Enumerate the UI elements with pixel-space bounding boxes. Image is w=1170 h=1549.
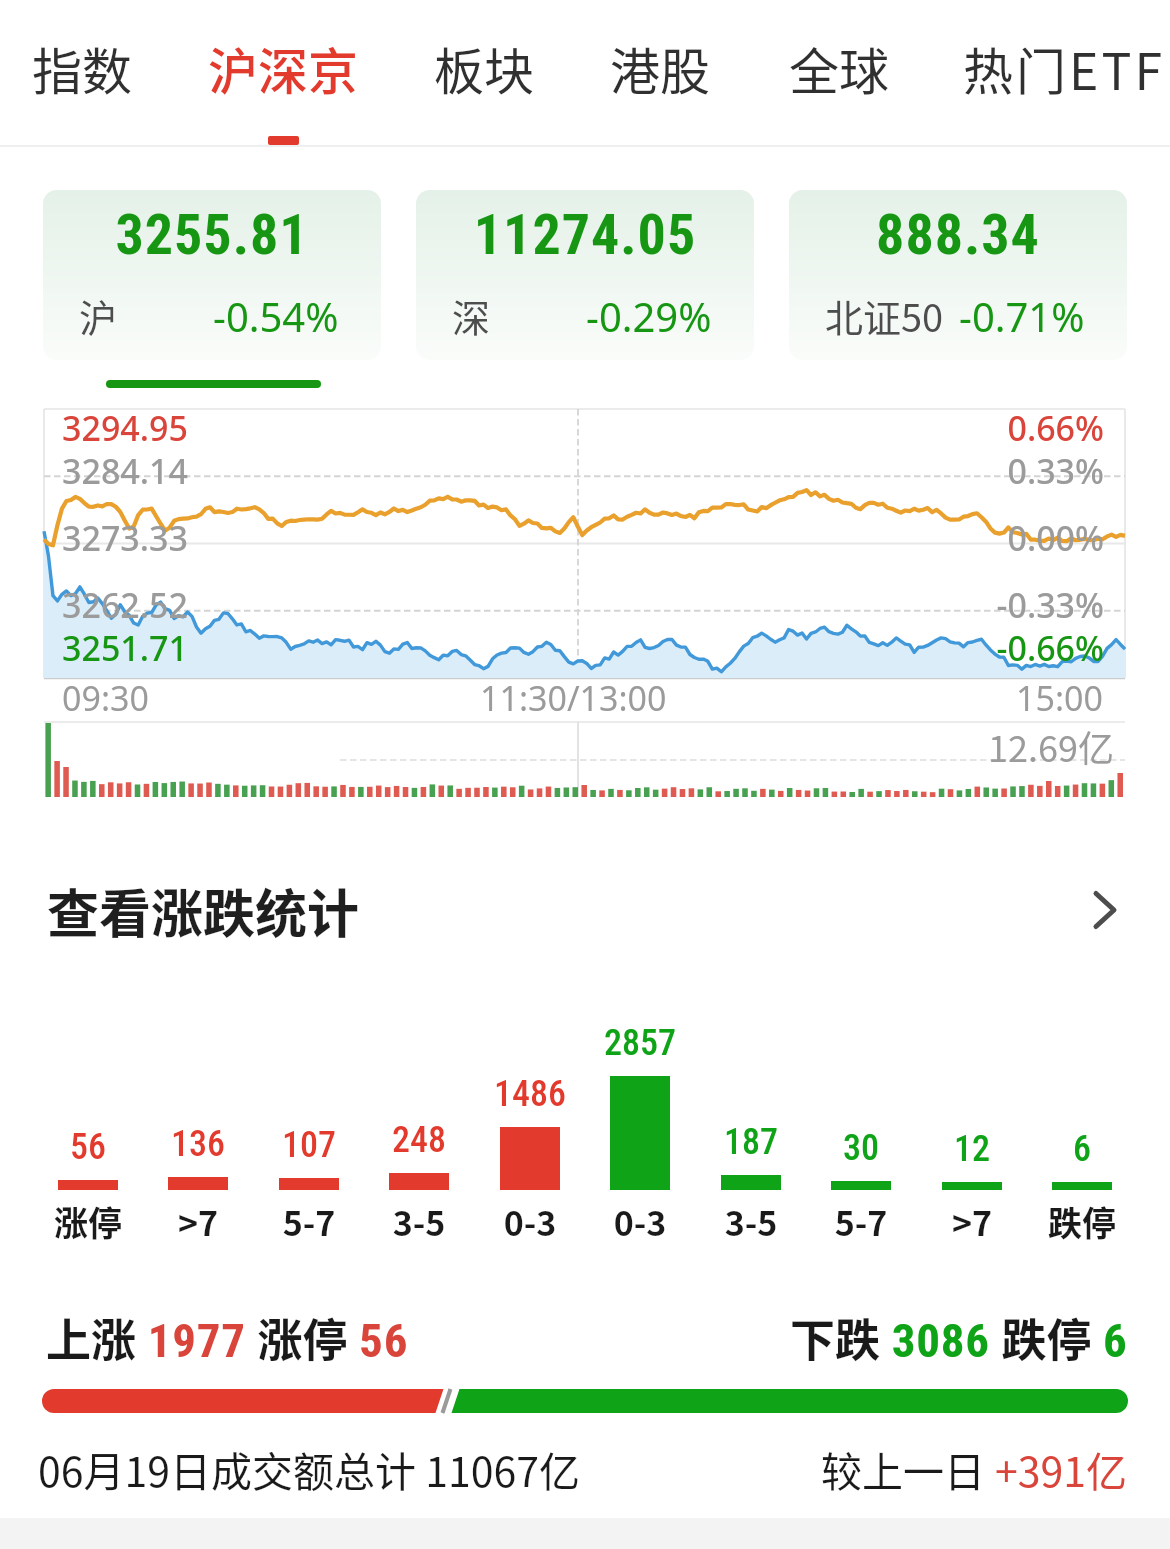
staticText: 0.66% xyxy=(0,405,1104,451)
staticText: 11:30/13:00 xyxy=(480,675,667,721)
staticText: 888.34 xyxy=(789,202,1127,268)
button[interactable] xyxy=(475,1015,585,1240)
button[interactable] xyxy=(143,1015,253,1240)
button[interactable]: 888.34 xyxy=(789,190,1127,360)
staticText: -0.66% xyxy=(0,625,1104,671)
button[interactable] xyxy=(1027,1015,1137,1240)
staticText: 3-5 xyxy=(696,1197,806,1246)
staticText: 港股 xyxy=(610,32,710,104)
staticText: 较上一日 xyxy=(821,1439,995,1498)
staticText: 5-7 xyxy=(806,1197,916,1246)
button[interactable] xyxy=(33,1015,143,1240)
staticText: 0.00% xyxy=(0,515,1104,561)
staticText: 3255.81 xyxy=(43,202,381,268)
staticText: 06月19日成交额总计 11067亿 xyxy=(38,1439,580,1498)
button[interactable]: Intraday index chart xyxy=(44,400,1126,800)
staticText: 上涨 1977 涨停 56 xyxy=(46,1305,409,1370)
button[interactable]: 指数 xyxy=(22,0,142,140)
staticText: 全球 xyxy=(789,32,889,104)
staticText: 板块 xyxy=(434,32,534,104)
staticText: 6 xyxy=(1027,1128,1137,1170)
staticText: 0-3 xyxy=(475,1197,585,1246)
button[interactable]: 全球 xyxy=(779,0,899,140)
button[interactable] xyxy=(917,1015,1027,1240)
staticText: 248 xyxy=(364,1119,474,1161)
staticText: 12.69亿 xyxy=(988,720,1114,772)
staticText: 187 xyxy=(696,1121,806,1163)
other: View rise and fall statistics xyxy=(1093,890,1123,930)
button[interactable]: 沪深京 xyxy=(198,0,368,140)
staticText: 0-3 xyxy=(585,1197,695,1246)
staticText: >7 xyxy=(143,1197,253,1246)
button[interactable]: 港股 xyxy=(600,0,720,140)
staticText: -0.33% xyxy=(0,582,1104,628)
staticText: +391亿 xyxy=(995,1439,1128,1498)
staticText: 3262.52 xyxy=(62,582,188,628)
staticText: 下跌 3086 跌停 6 xyxy=(790,1305,1128,1370)
staticText: 热门ETF xyxy=(963,32,1165,104)
button[interactable]: 热门ETF xyxy=(949,0,1170,140)
staticText: 2857 xyxy=(585,1022,695,1064)
button[interactable]: 11274.05 xyxy=(416,190,754,360)
staticText: 09:30 xyxy=(62,675,149,721)
staticText: >7 xyxy=(917,1197,1027,1246)
staticText: -0.29% xyxy=(586,289,712,343)
staticText: 3-5 xyxy=(364,1197,474,1246)
staticText: 深 xyxy=(452,288,491,343)
staticText: 15:00 xyxy=(1016,675,1103,721)
staticText: 涨停 xyxy=(33,1197,143,1246)
staticText: 3294.95 xyxy=(62,405,188,451)
staticText: 查看涨跌统计 xyxy=(47,873,360,948)
button[interactable]: 查看涨跌统计 xyxy=(0,851,1170,969)
staticText: 12 xyxy=(917,1128,1027,1170)
staticText: 107 xyxy=(254,1124,364,1166)
staticText: 沪 xyxy=(79,288,118,343)
button[interactable] xyxy=(364,1015,474,1240)
staticText: 5-7 xyxy=(254,1197,364,1246)
staticText: -0.71% xyxy=(959,289,1085,343)
staticText: 1486 xyxy=(475,1073,585,1115)
button[interactable] xyxy=(254,1015,364,1240)
staticText: 指数 xyxy=(32,32,132,104)
button[interactable] xyxy=(806,1015,916,1240)
button[interactable] xyxy=(696,1015,806,1240)
staticText: 沪深京 xyxy=(208,32,358,104)
staticText: 11274.05 xyxy=(416,202,754,268)
staticText: 56 xyxy=(33,1126,143,1168)
staticText: -0.54% xyxy=(213,289,339,343)
button[interactable]: 3255.81 xyxy=(43,190,381,360)
staticText: 0.33% xyxy=(0,448,1104,494)
staticText: 3284.14 xyxy=(62,448,188,494)
staticText: 30 xyxy=(806,1127,916,1169)
staticText: 136 xyxy=(143,1123,253,1165)
staticText: 3251.71 xyxy=(62,625,188,671)
staticText: 跌停 xyxy=(1027,1197,1137,1246)
button[interactable]: 板块 xyxy=(424,0,544,140)
staticText: 北证50 xyxy=(825,288,944,343)
staticText: 3273.33 xyxy=(62,515,188,561)
button[interactable] xyxy=(585,1015,695,1240)
